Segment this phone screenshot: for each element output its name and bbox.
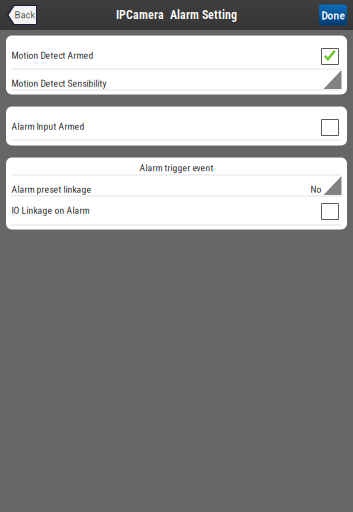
button[interactable]: IO Linkage on Alarm: [6, 196, 347, 224]
staticText: Alarm trigger event: [139, 162, 213, 174]
staticText: IO Linkage on Alarm: [11, 205, 89, 216]
staticText: Alarm Input Armed: [11, 121, 84, 132]
button[interactable]: Back: [0, 5, 37, 25]
button[interactable]: Motion Detect Armed: [6, 42, 347, 68]
button[interactable]: Done: [319, 4, 353, 25]
button[interactable]: Alarm preset linkage: [6, 175, 347, 195]
button[interactable]: Motion Detect Sensibility: [6, 69, 347, 89]
staticText: No: [310, 184, 321, 195]
staticText: Back: [14, 9, 35, 20]
staticText: Motion Detect Sensibility: [11, 78, 106, 89]
staticText: IPCamera Alarm Setting: [116, 8, 237, 22]
staticText: Alarm preset linkage: [11, 184, 91, 195]
button[interactable]: Alarm Input Armed: [6, 113, 347, 139]
staticText: Motion Detect Armed: [11, 50, 93, 61]
staticText: Done: [321, 10, 344, 22]
